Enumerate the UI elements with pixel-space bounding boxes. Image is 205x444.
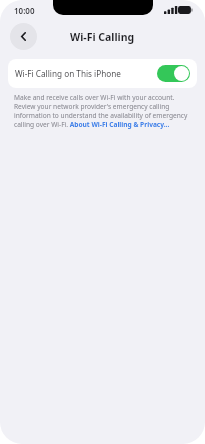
button[interactable]: Wi-Fi Calling on This iPhone xyxy=(8,59,197,88)
staticText: Wi-Fi Calling on This iPhone xyxy=(15,68,121,79)
button[interactable]: Wi-Fi Calling on This iPhone toggle, on xyxy=(157,65,190,82)
staticText: 10:00 xyxy=(14,5,35,16)
staticText: Wi-Fi Calling xyxy=(70,30,135,44)
button[interactable]: Back xyxy=(10,23,37,50)
staticText: Make and receive calls over Wi-Fi with y… xyxy=(14,93,191,129)
